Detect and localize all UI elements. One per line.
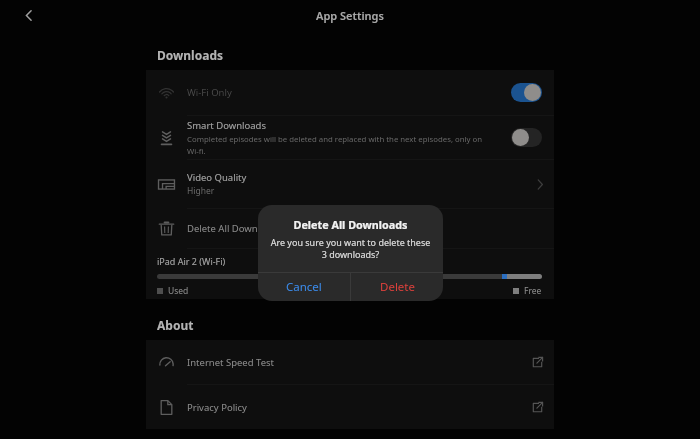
staticText: Video Quality (187, 171, 247, 184)
staticText: Internet Speed Test (187, 356, 274, 369)
button[interactable]: Cancel (258, 273, 350, 301)
staticText: Cancel (286, 279, 322, 295)
button[interactable]: Back (15, 2, 41, 28)
staticText: iPad Air 2 (Wi-Fi) (157, 255, 226, 267)
staticText: App Settings (316, 8, 384, 23)
button[interactable]: Internet Speed Test (146, 340, 554, 384)
button[interactable]: Privacy Policy (146, 385, 554, 429)
staticText: Wi-Fi Only (187, 86, 232, 99)
button[interactable]: Video Quality (146, 160, 554, 208)
staticText: Higher (187, 185, 215, 197)
staticText: Delete (380, 279, 415, 295)
staticText: Downloads (157, 47, 223, 63)
staticText: Are you sure you want to delete these 3 … (262, 236, 439, 261)
button[interactable]: Delete All Downloads (146, 209, 554, 248)
staticText: Privacy Policy (187, 401, 247, 414)
staticText: Free (524, 285, 542, 297)
button[interactable]: Smart Downloads (146, 116, 554, 159)
button[interactable]: Delete (351, 273, 443, 301)
button[interactable]: Wi-Fi Only (146, 70, 554, 115)
staticText: Used (168, 285, 189, 297)
staticText: Delete All Downloads (187, 222, 282, 235)
staticText: Smart Downloads (187, 119, 267, 132)
staticText: Completed episodes will be deleted and r… (187, 134, 484, 156)
staticText: About (157, 317, 194, 333)
staticText: Delete All Downloads (258, 217, 443, 232)
